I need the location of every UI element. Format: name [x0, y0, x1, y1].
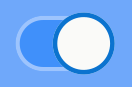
- button[interactable]: Toggle: [15, 12, 115, 74]
